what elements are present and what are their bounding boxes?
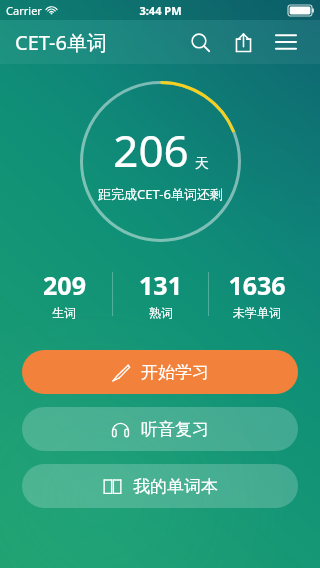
staticText: 209 [43, 268, 86, 302]
staticText: 1636 [228, 268, 286, 302]
staticText: 距完成CET-6单词还剩 [98, 185, 223, 203]
staticText: 3:44 PM [139, 3, 182, 18]
staticText: Carrier [6, 3, 42, 18]
button[interactable]: 131 [113, 268, 208, 320]
staticText: 听音复习 [141, 419, 209, 440]
staticText: 206 [113, 120, 189, 180]
button[interactable]: 我的单词本 [22, 464, 298, 508]
button[interactable]: Share [223, 22, 263, 62]
staticText: 天 [195, 155, 209, 173]
staticText: 131 [139, 268, 182, 302]
button[interactable]: 听音复习 [22, 407, 298, 451]
staticText: CET-6单词 [15, 29, 107, 56]
staticText: 开始学习 [141, 362, 209, 383]
button[interactable]: 开始学习 [22, 350, 298, 394]
staticText: 我的单词本 [133, 476, 218, 497]
button[interactable]: 1636 [209, 268, 304, 320]
button[interactable]: Search [180, 22, 220, 62]
button[interactable]: 209 [16, 268, 112, 320]
button[interactable]: Menu [266, 22, 306, 62]
staticText: 未学单词 [233, 305, 281, 320]
staticText: 熟词 [149, 305, 173, 320]
button[interactable]: CET-6单词 [15, 29, 107, 56]
staticText: 生词 [52, 305, 76, 320]
